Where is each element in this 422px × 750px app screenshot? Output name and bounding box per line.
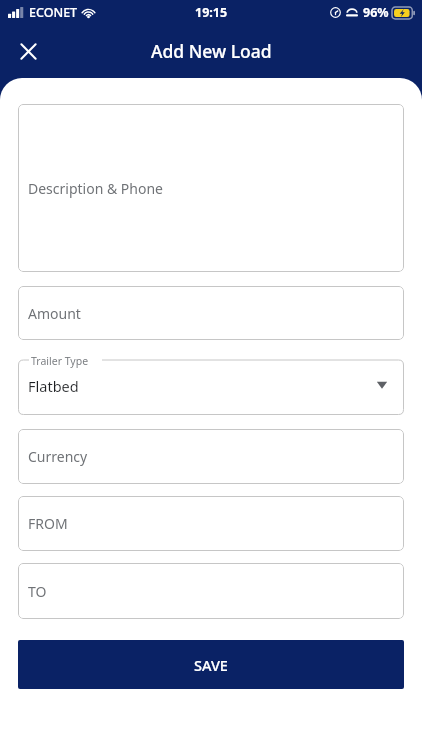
staticText: 96%	[363, 4, 389, 21]
button[interactable]: TO	[18, 563, 404, 619]
staticText: FROM	[28, 514, 68, 533]
button[interactable]: FROM	[18, 496, 404, 551]
staticText: SAVE	[194, 655, 228, 675]
staticText: ECONET	[29, 4, 78, 21]
staticText: Currency	[28, 447, 88, 466]
staticText: Amount	[28, 304, 81, 323]
button[interactable]: Currency	[18, 429, 404, 484]
staticText: Flatbed	[28, 376, 79, 396]
button[interactable]: SAVE	[18, 640, 404, 689]
staticText: Add New Load	[151, 39, 272, 63]
staticText: Description & Phone	[28, 179, 164, 198]
button[interactable]: Close	[9, 32, 47, 70]
staticText: Trailer Type	[31, 354, 89, 368]
button[interactable]: Trailer Type	[18, 353, 404, 415]
staticText: TO	[28, 582, 47, 601]
button[interactable]: Amount	[18, 286, 404, 340]
staticText: 19:15	[195, 4, 228, 21]
button[interactable]: Description & Phone	[18, 104, 404, 272]
